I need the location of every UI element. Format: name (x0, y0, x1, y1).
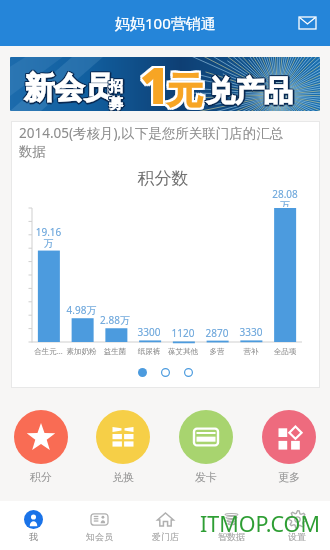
staticText: 募 (110, 96, 124, 111)
button[interactable]: 爱门店 (132, 501, 198, 550)
staticText: 新会员 (23, 69, 113, 107)
staticText: 新会员 (24, 68, 114, 106)
staticText: 28.08 万 (268, 187, 302, 207)
button[interactable]: 我 (0, 501, 66, 550)
staticText: 积分 (30, 470, 52, 484)
staticText: 发卡 (195, 470, 217, 484)
staticText: 1120 (166, 326, 200, 340)
button[interactable]: 积分 (0, 410, 82, 484)
staticText: 1 (142, 57, 172, 103)
button[interactable]: 兑换 (82, 410, 164, 484)
staticText: 1 (142, 57, 172, 107)
staticText: 募 (110, 94, 124, 111)
staticText: 兑换 (112, 470, 134, 484)
staticText: 葆艾其他 (166, 347, 200, 356)
staticText: 招 (108, 78, 122, 96)
staticText: 兑产品 (205, 72, 292, 109)
staticText: 元 (167, 66, 203, 111)
staticText: 兑产品 (206, 72, 293, 109)
staticText: 招 (108, 79, 122, 97)
staticText: 募 (109, 94, 123, 111)
staticText: 元 (169, 66, 205, 111)
staticText: 新会员 (26, 69, 116, 107)
staticText: 募 (109, 97, 123, 111)
staticText: 招 (110, 79, 124, 97)
staticText: 积分数 (11, 168, 315, 189)
staticText: 1 (142, 57, 172, 105)
staticText: 募 (111, 95, 125, 111)
staticText: ITMOP.COM (200, 509, 320, 538)
staticText: 新会员 (24, 69, 114, 107)
staticText: 妈妈100营销通 (115, 13, 216, 33)
staticText: 兑产品 (207, 74, 294, 111)
staticText: 合生元... (32, 346, 65, 356)
staticText: 设置 (288, 531, 306, 542)
staticText: 元 (165, 70, 201, 111)
staticText: 招 (108, 77, 122, 95)
staticText: 知会员 (86, 531, 113, 542)
staticText: 新会员 (23, 70, 113, 108)
button[interactable]: Page 3 (184, 368, 193, 377)
staticText: 19.16 万 (32, 225, 65, 250)
staticText: 募 (108, 95, 122, 111)
button[interactable]: 新会员 (10, 57, 320, 111)
staticText: 募 (109, 95, 123, 111)
staticText: 多营 (200, 347, 234, 356)
staticText: 3330 (234, 325, 268, 339)
staticText: 3300 (132, 325, 166, 339)
staticText: 营补 (234, 347, 268, 356)
staticText: 1 (138, 57, 168, 107)
staticText: 更多 (278, 470, 300, 484)
staticText: 1 (140, 57, 170, 105)
button[interactable]: 智数据 (198, 501, 264, 550)
staticText: 智数据 (218, 531, 245, 542)
staticText: 招 (111, 78, 125, 96)
staticText: 元 (165, 68, 201, 111)
staticText: 2014.05(考核月),以下是您所关联门店的汇总数据 (19, 124, 294, 160)
staticText: 元 (169, 68, 205, 111)
staticText: 兑产品 (208, 73, 295, 110)
staticText: 兑产品 (207, 72, 294, 109)
staticText: 1 (138, 57, 168, 105)
staticText: 2.88万 (98, 313, 132, 327)
button[interactable]: Page 1 (138, 368, 147, 377)
staticText: 全品项 (268, 347, 302, 356)
staticText: 1 (140, 57, 170, 103)
staticText: 新会员 (25, 70, 115, 108)
staticText: 新会员 (25, 68, 115, 106)
staticText: 招 (109, 78, 123, 96)
button[interactable]: 知会员 (66, 501, 132, 550)
button[interactable]: Messages (292, 8, 322, 38)
staticText: 兑产品 (205, 74, 292, 111)
staticText: 4.98万 (65, 303, 98, 317)
staticText: 益生菌 (98, 347, 132, 356)
staticText: 纸尿裤 (132, 347, 166, 356)
staticText: 元 (167, 68, 203, 111)
staticText: 募 (108, 96, 122, 111)
button[interactable]: Page 2 (161, 368, 170, 377)
staticText: 招 (110, 77, 124, 95)
staticText: 新会员 (23, 68, 113, 106)
staticText: 新会员 (24, 71, 114, 109)
button[interactable]: 更多 (247, 410, 330, 484)
staticText: 兑产品 (206, 75, 293, 111)
staticText: 爱门店 (152, 531, 179, 542)
button[interactable]: 发卡 (164, 410, 247, 484)
button[interactable]: 设置 (264, 501, 330, 550)
staticText: 兑产品 (206, 73, 293, 110)
staticText: 招 (109, 77, 123, 95)
staticText: 1 (140, 57, 170, 107)
staticText: 素加奶粉 (65, 347, 98, 356)
staticText: 元 (167, 70, 203, 111)
staticText: 1 (138, 57, 168, 103)
staticText: 元 (165, 66, 201, 111)
staticText: 招 (109, 80, 123, 98)
staticText: 元 (169, 70, 205, 111)
staticText: 2870 (200, 326, 234, 340)
staticText: 兑产品 (205, 73, 292, 110)
staticText: 募 (108, 94, 122, 111)
staticText: 我 (29, 531, 38, 542)
